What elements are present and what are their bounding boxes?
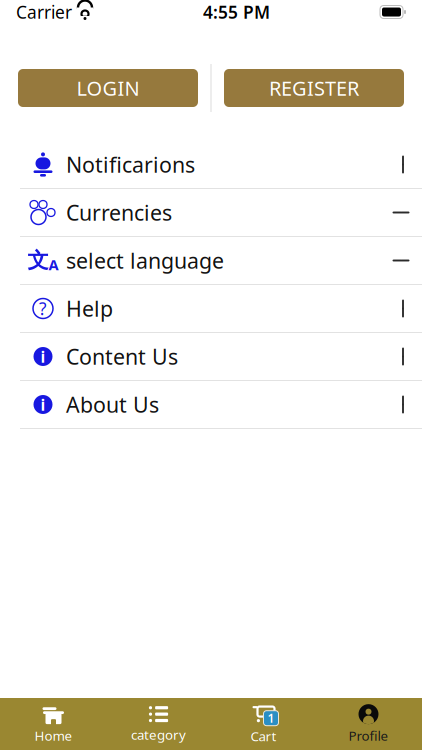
staticText: A	[48, 255, 58, 274]
button[interactable]: Profile	[316, 698, 421, 750]
button[interactable]: Currencies	[0, 189, 422, 236]
button[interactable]: Notificarions	[0, 141, 422, 188]
button[interactable]: category	[106, 698, 211, 750]
staticText: Currencies	[66, 198, 172, 227]
button[interactable]: 文	[0, 237, 422, 284]
staticText: About Us	[66, 390, 159, 419]
staticText: Profile	[348, 727, 388, 744]
button[interactable]: i	[0, 333, 422, 380]
staticText: i	[40, 346, 45, 367]
staticText: ?	[39, 297, 47, 320]
button[interactable]: Home	[1, 698, 106, 750]
staticText: select language	[66, 246, 224, 275]
button[interactable]: i	[0, 381, 422, 428]
staticText: 文	[27, 247, 48, 274]
staticText: LOGIN	[76, 75, 139, 101]
button[interactable]: REGISTER	[224, 69, 404, 107]
button[interactable]: 1	[211, 698, 316, 750]
staticText: Carrier	[16, 0, 72, 23]
staticText: Notificarions	[66, 150, 195, 179]
staticText: 4:55 PM	[203, 0, 270, 23]
button[interactable]: ?	[0, 285, 422, 332]
staticText: Cart	[250, 727, 276, 745]
staticText: Help	[66, 294, 113, 323]
staticText: Home	[34, 727, 72, 744]
staticText: category	[131, 726, 186, 743]
staticText: Content Us	[66, 342, 178, 371]
staticText: i	[40, 394, 45, 415]
button[interactable]: LOGIN	[18, 69, 198, 107]
staticText: REGISTER	[269, 75, 359, 101]
staticText: 1	[267, 710, 274, 726]
